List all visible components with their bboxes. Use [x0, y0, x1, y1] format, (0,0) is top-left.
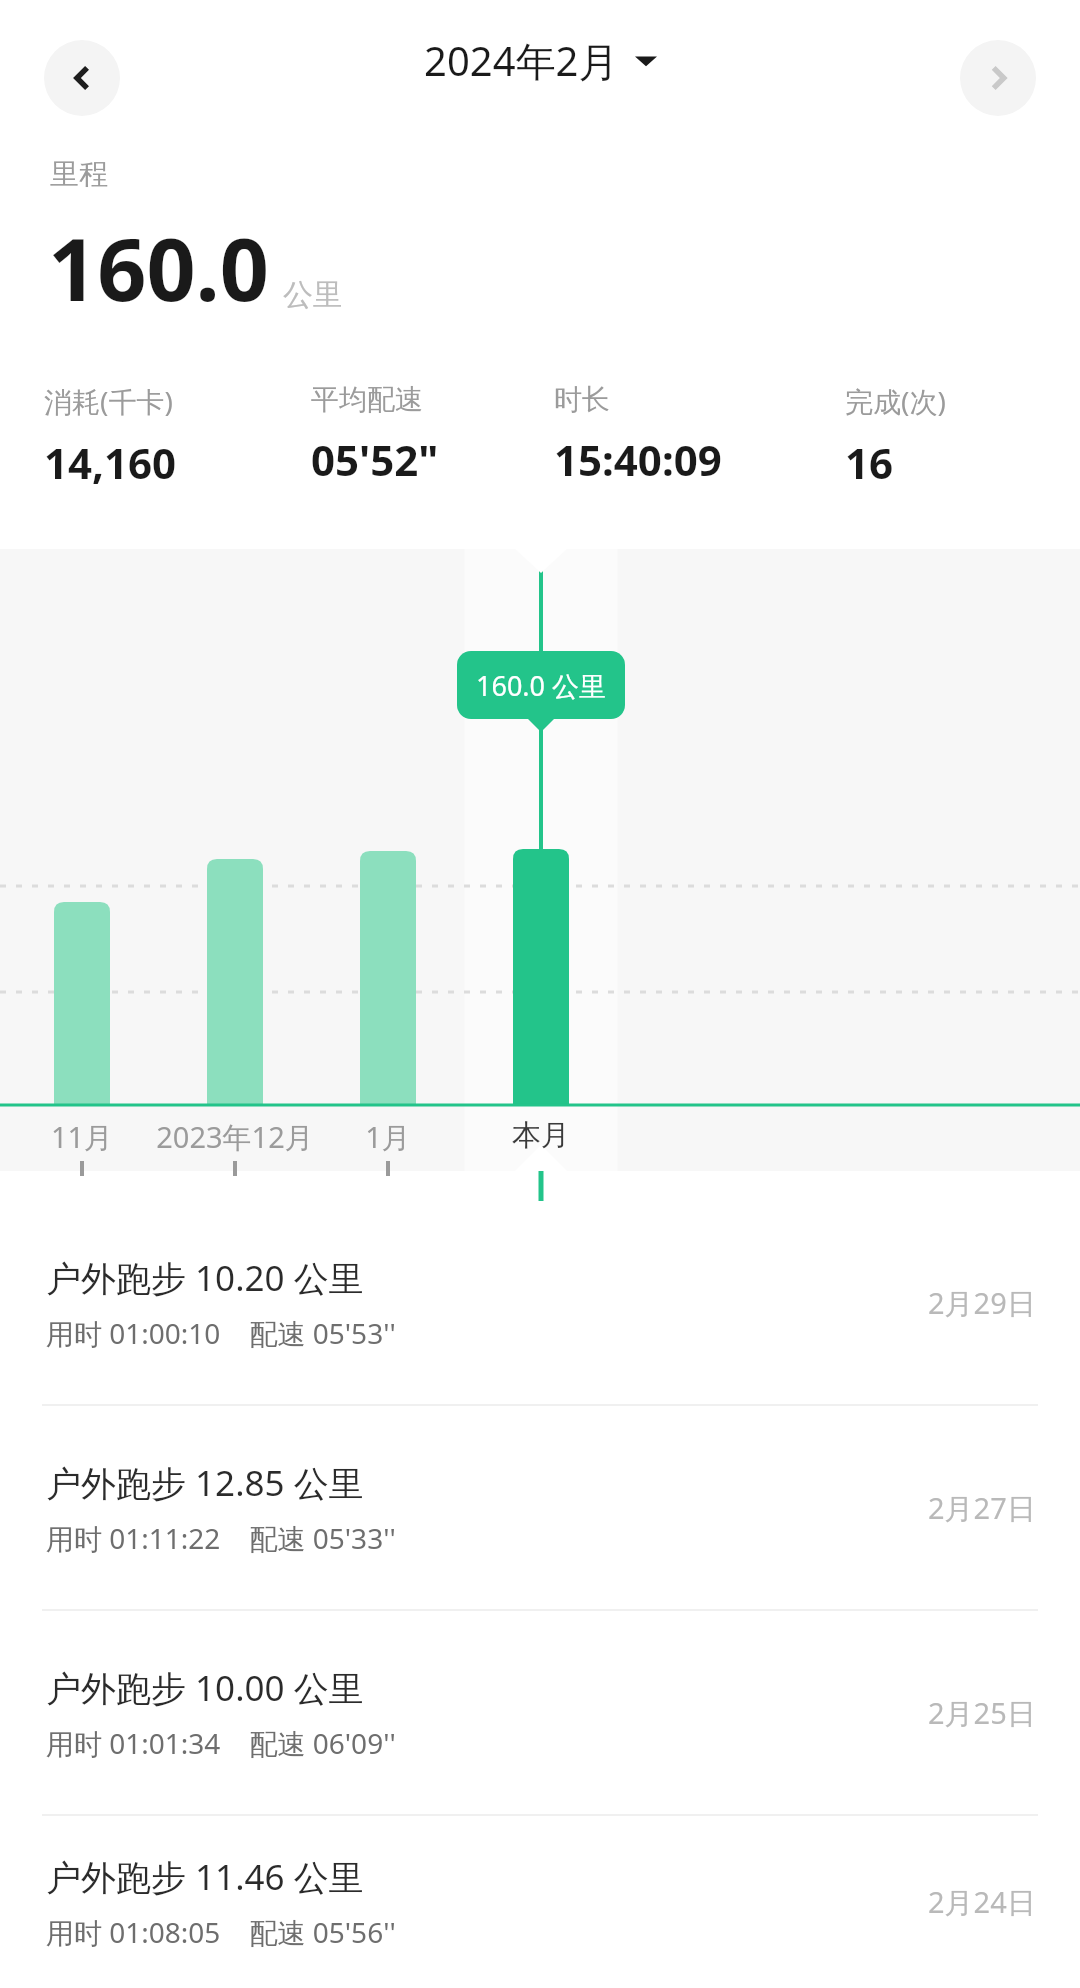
button[interactable]: Back: [44, 40, 120, 116]
staticText: 用时 01:00:10 配速 05'53'': [46, 1314, 396, 1352]
staticText: 11月: [22, 1117, 142, 1157]
staticText: 公里: [283, 276, 343, 314]
staticText: 用时 01:11:22 配速 05'33'': [46, 1519, 396, 1557]
staticText: 14,160: [44, 434, 177, 491]
button[interactable]: 户外跑步 11.46 公里: [0, 1816, 1080, 1988]
button[interactable]: 户外跑步 12.85 公里: [0, 1406, 1080, 1609]
staticText: 15:40:09: [554, 431, 722, 488]
staticText: 2月25日: [928, 1693, 1036, 1733]
staticText: 160.0: [48, 209, 269, 326]
staticText: 2月29日: [928, 1283, 1036, 1323]
staticText: 里程: [50, 156, 108, 193]
button[interactable]: 160.0 公里: [457, 651, 625, 719]
button[interactable]: Next month: [960, 40, 1036, 116]
staticText: 05'52": [311, 431, 439, 488]
staticText: 1月: [328, 1117, 448, 1157]
staticText: 户外跑步 11.46 公里: [46, 1853, 364, 1901]
staticText: 时长: [554, 382, 610, 417]
staticText: 2月27日: [928, 1488, 1036, 1528]
button[interactable]: 户外跑步 10.00 公里: [0, 1611, 1080, 1814]
staticText: 用时 01:01:34 配速 06'09'': [46, 1724, 396, 1762]
staticText: 平均配速: [311, 382, 423, 417]
staticText: 消耗(千卡): [44, 382, 173, 420]
staticText: 完成(次): [845, 382, 946, 420]
button[interactable]: 2024年2月: [416, 33, 665, 88]
staticText: 160.0 公里: [476, 667, 607, 704]
staticText: 本月: [481, 1117, 601, 1154]
staticText: 用时 01:08:05 配速 05'56'': [46, 1913, 396, 1951]
staticText: 2月24日: [928, 1882, 1036, 1922]
staticText: 2023年12月: [125, 1117, 345, 1157]
staticText: 户外跑步 10.00 公里: [46, 1664, 364, 1712]
staticText: 16: [845, 434, 894, 491]
button[interactable]: 户外跑步 10.20 公里: [0, 1201, 1080, 1404]
staticText: 2024年2月: [424, 33, 619, 88]
staticText: 户外跑步 12.85 公里: [46, 1459, 364, 1507]
staticText: 户外跑步 10.20 公里: [46, 1254, 364, 1302]
